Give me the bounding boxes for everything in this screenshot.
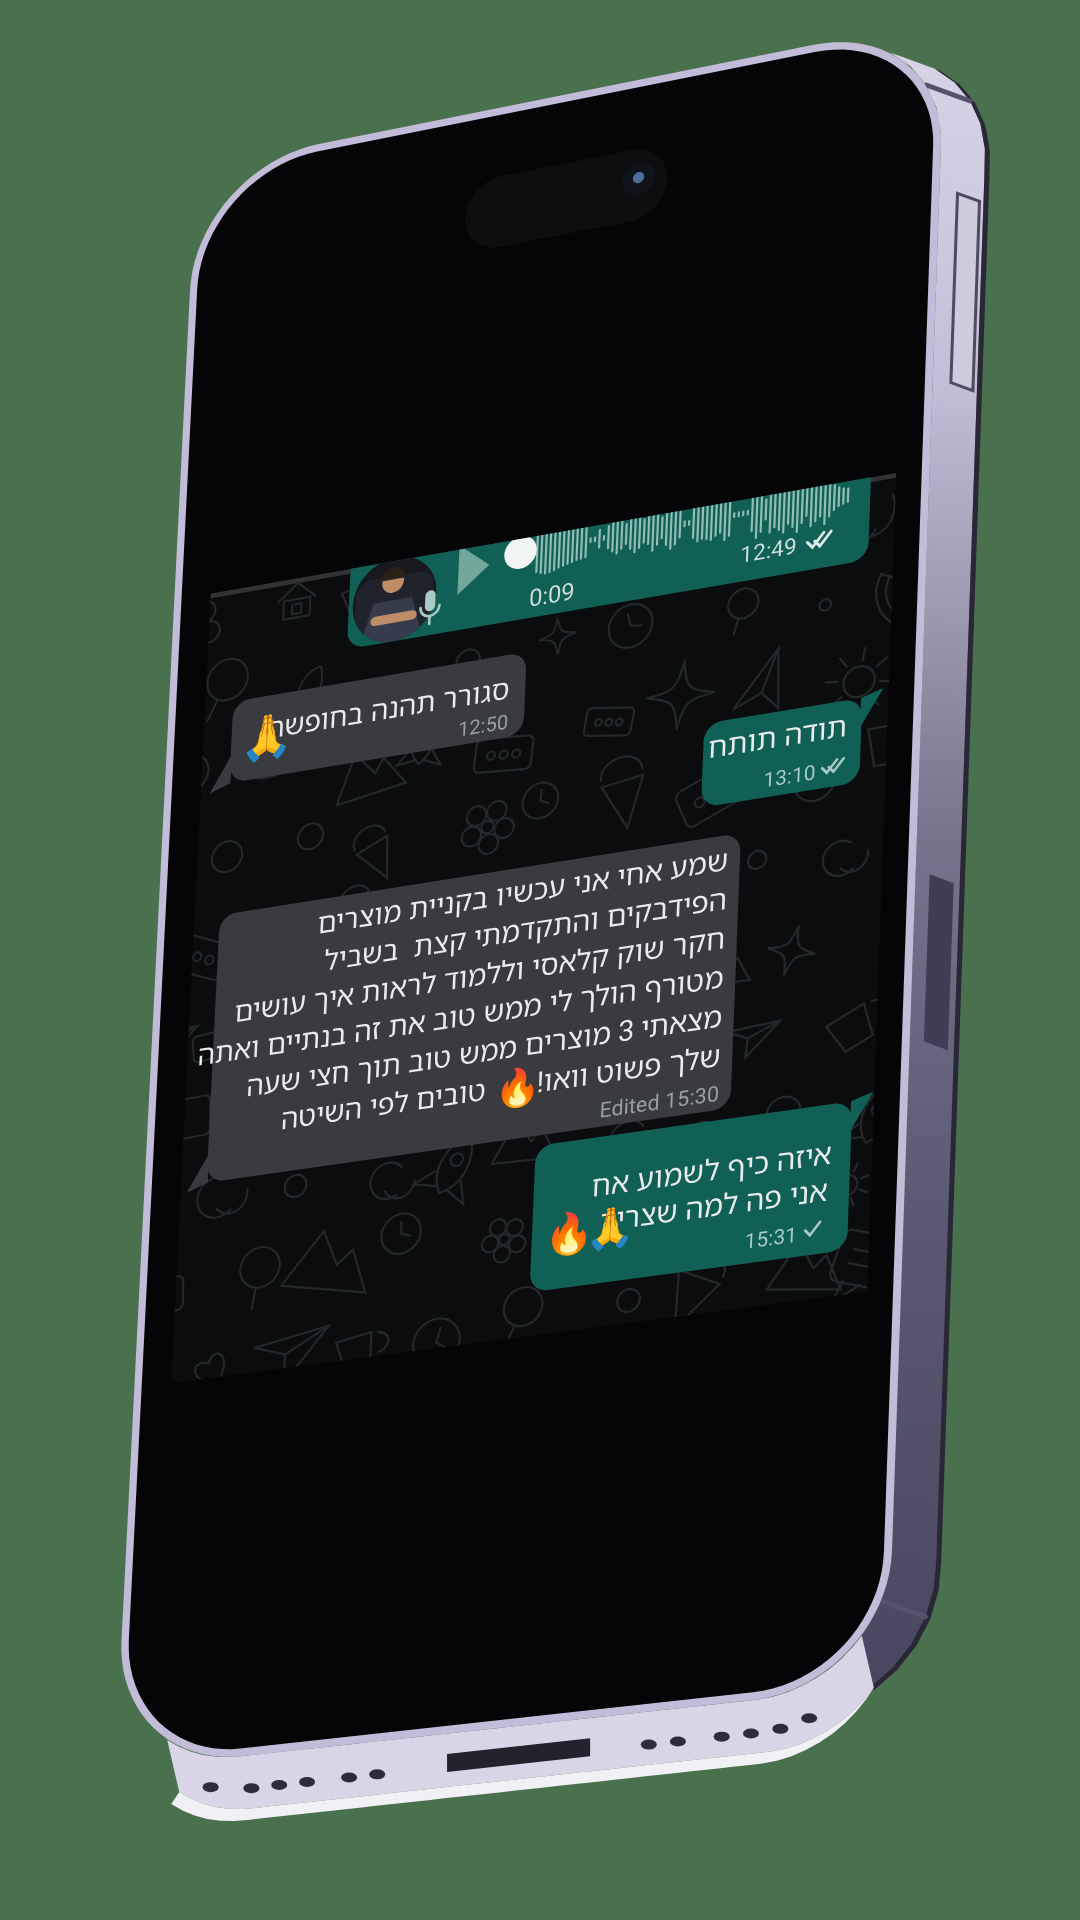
button[interactable]: WhatsApp chat conversation on iPhone (0, 0, 1080, 1920)
